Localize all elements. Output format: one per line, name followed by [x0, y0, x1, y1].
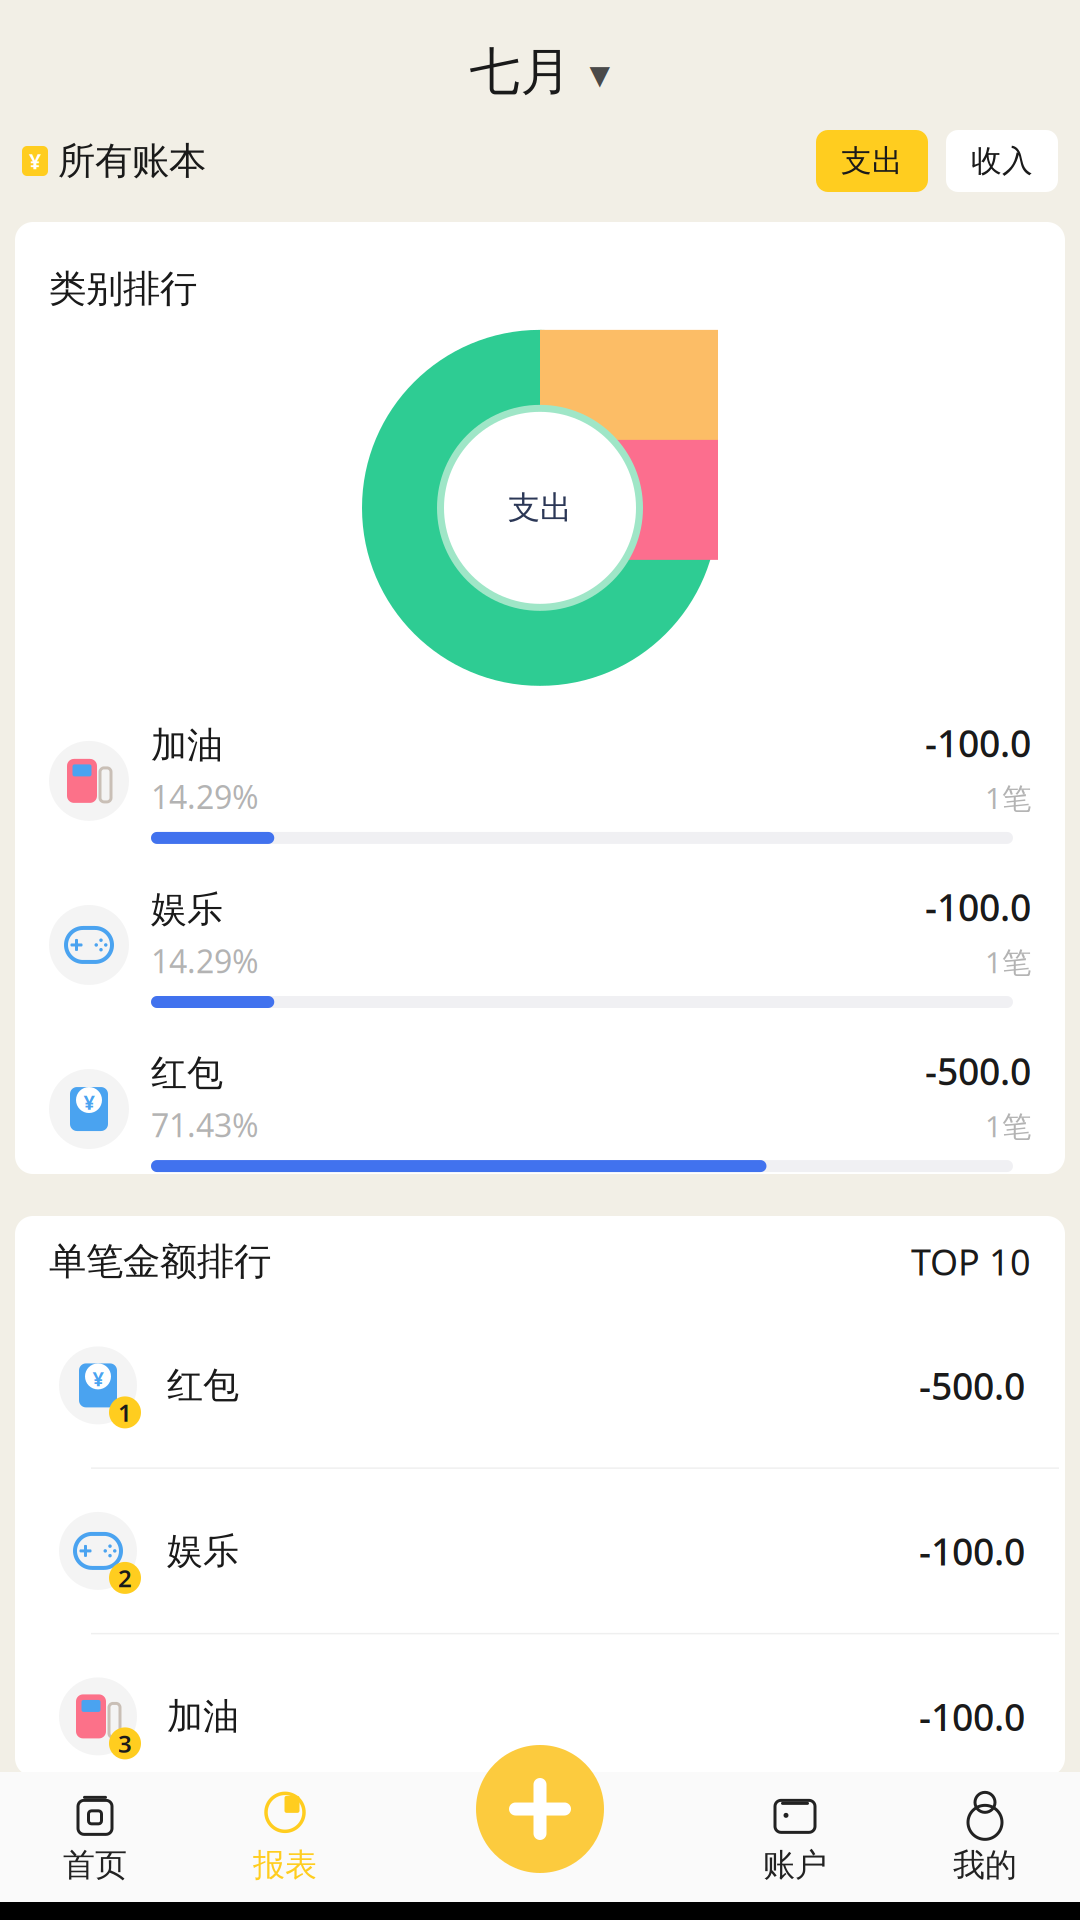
staticText: ¥ [83, 1089, 94, 1115]
staticText: 14.29% [151, 939, 259, 982]
button[interactable]: 报表 [190, 1781, 380, 1893]
staticText: -100.0 [919, 1692, 1025, 1741]
staticText: 单笔金额排行 [49, 1239, 271, 1284]
button[interactable]: 加油 [15, 718, 1065, 844]
staticText: 加油 [151, 723, 223, 767]
staticText: 14.29% [151, 775, 259, 818]
staticText: ¥ [29, 147, 41, 175]
button[interactable]: ¥ [15, 1046, 1065, 1172]
staticText: 娱乐 [151, 887, 223, 931]
staticText: 红包 [151, 1051, 223, 1095]
staticText: 2 [118, 1562, 132, 1594]
staticText: 1 [118, 1396, 132, 1428]
staticText: 加油 [167, 1694, 239, 1738]
button[interactable]: 3 [15, 1634, 1065, 1798]
staticText: 娱乐 [167, 1529, 239, 1573]
staticText: 1笔 [985, 1106, 1031, 1145]
button[interactable]: 娱乐 [15, 882, 1065, 1008]
staticText: -100.0 [925, 718, 1031, 767]
staticText: 账户 [763, 1845, 827, 1885]
button[interactable]: Add transaction [476, 1745, 604, 1873]
staticText: 首页 [63, 1845, 127, 1885]
staticText: 收入 [971, 142, 1033, 180]
staticText: 支出 [841, 142, 903, 180]
button[interactable]: 收入 [946, 130, 1058, 192]
button[interactable]: 账户 [700, 1781, 890, 1893]
button[interactable]: 首页 [0, 1781, 190, 1893]
button[interactable]: ¥ [15, 1303, 1065, 1467]
staticText: -500.0 [919, 1361, 1025, 1410]
staticText: 71.43% [151, 1104, 259, 1146]
staticText: 所有账本 [58, 138, 206, 184]
button[interactable]: 七月 [469, 24, 610, 120]
button[interactable]: ¥ [22, 138, 206, 184]
staticText: -100.0 [919, 1526, 1025, 1576]
staticText: 1笔 [985, 942, 1031, 981]
button[interactable]: 2 [15, 1469, 1065, 1633]
staticText: TOP 10 [911, 1238, 1031, 1285]
staticText: 我的 [953, 1845, 1017, 1885]
staticText: ▼ [589, 60, 610, 90]
staticText: 红包 [167, 1363, 239, 1407]
staticText: 类别排行 [49, 266, 197, 312]
staticText: 1笔 [985, 778, 1031, 817]
staticText: 七月 [469, 41, 571, 103]
staticText: -100.0 [925, 882, 1031, 931]
button[interactable]: 我的 [890, 1781, 1080, 1893]
staticText: -500.0 [925, 1046, 1031, 1096]
button[interactable]: 支出 [816, 130, 928, 192]
staticText: 报表 [253, 1845, 317, 1885]
staticText: 3 [118, 1727, 132, 1759]
staticText: 支出 [508, 488, 572, 527]
staticText: ¥ [92, 1365, 103, 1392]
